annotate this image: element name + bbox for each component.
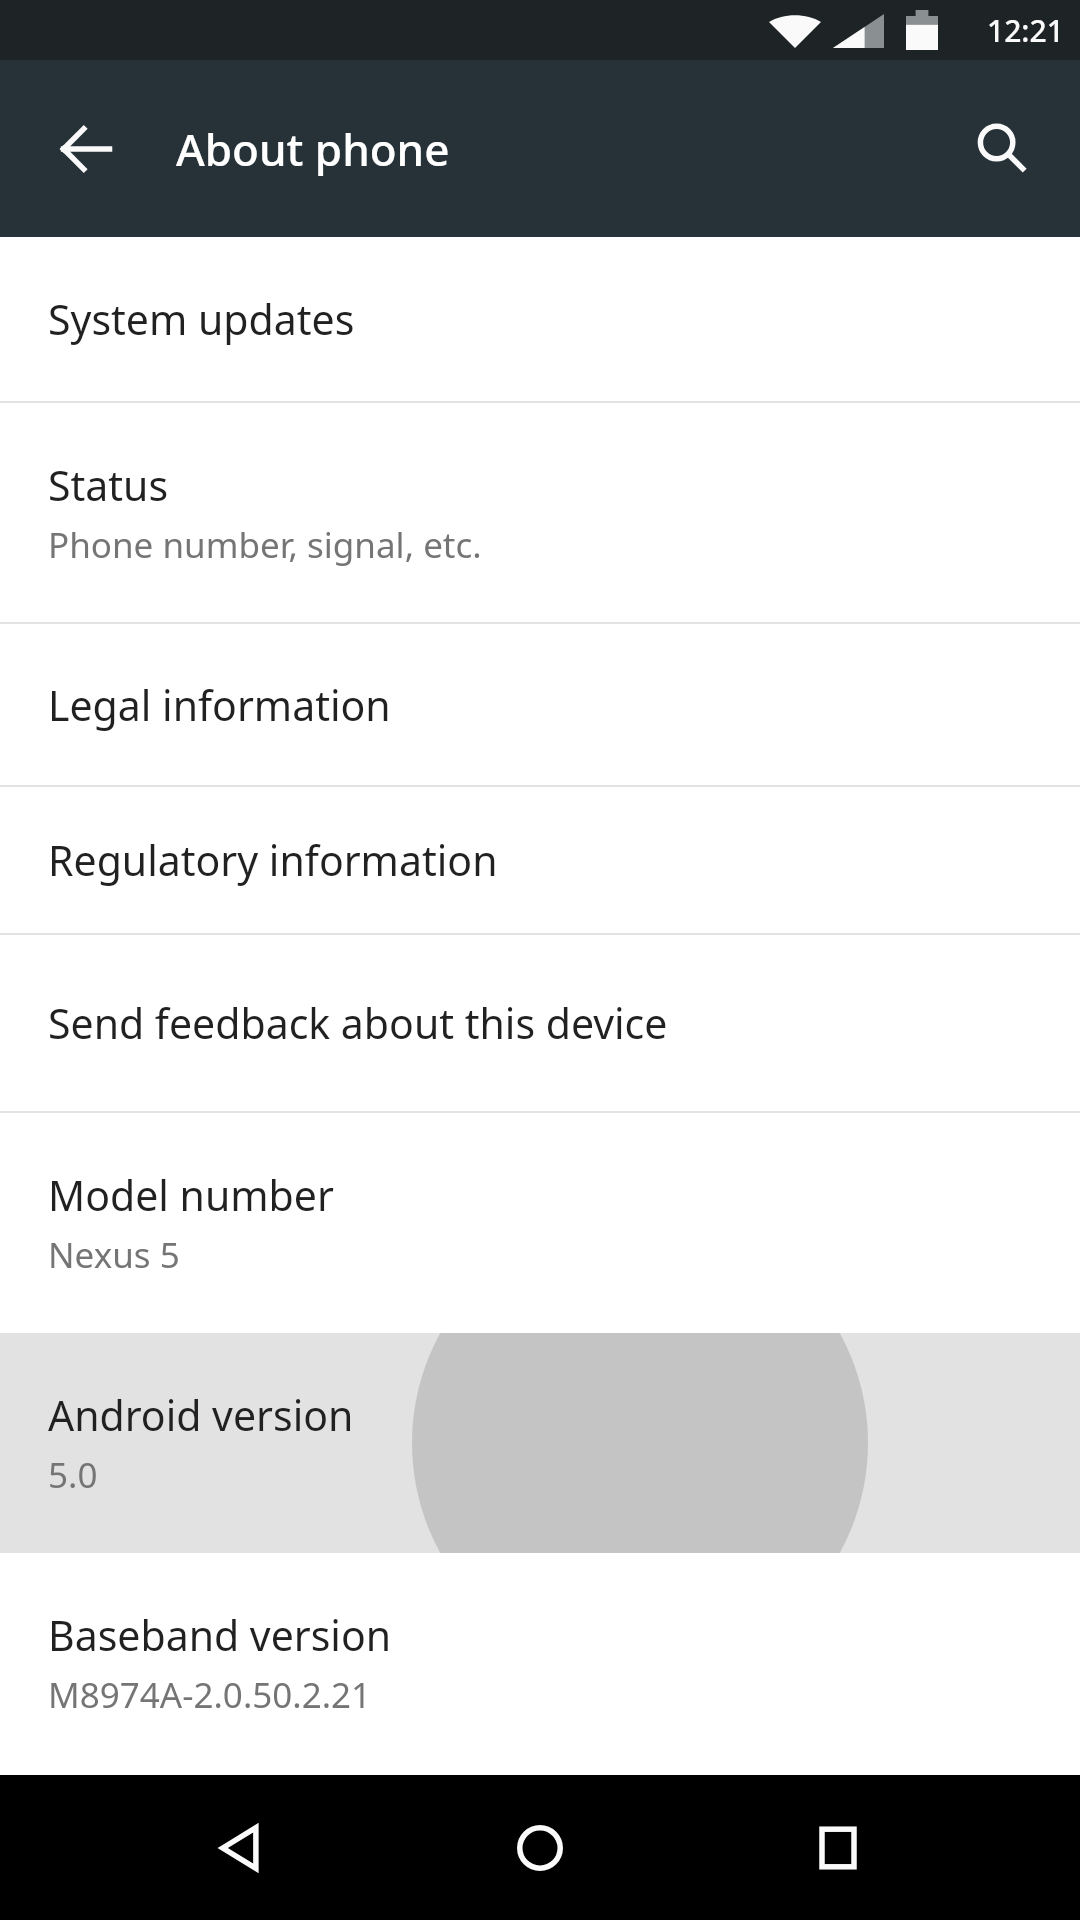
button[interactable]: Back [188,1793,298,1903]
button[interactable]: Status [0,403,1080,622]
staticText: Baseband version [48,1607,392,1663]
staticText: 5.0 [48,1451,98,1499]
staticText: Regulatory information [48,832,498,888]
staticText: 12:21 [987,10,1064,51]
button[interactable]: Search [946,93,1058,205]
staticText: Phone number, signal, etc. [48,521,482,569]
staticText: Model number [48,1167,334,1223]
staticText: Nexus 5 [48,1231,180,1279]
staticText: M8974A-2.0.50.2.21 [48,1671,372,1719]
staticText: About phone [176,119,450,179]
button[interactable]: Back [30,93,142,205]
button[interactable]: Regulatory information [0,787,1080,933]
button[interactable]: System updates [0,237,1080,401]
button[interactable]: Recent apps [783,1793,893,1903]
button[interactable]: Baseband version [0,1553,1080,1773]
button[interactable]: Model number [0,1113,1080,1333]
button[interactable]: Android version [0,1333,1080,1553]
staticText: Legal information [48,677,391,733]
staticText: Status [48,457,169,513]
staticText: System updates [48,291,355,347]
staticText: Send feedback about this device [48,995,668,1051]
staticText: Android version [48,1387,354,1443]
button[interactable]: Legal information [0,624,1080,785]
button[interactable]: Send feedback about this device [0,935,1080,1111]
button[interactable]: Home [485,1793,595,1903]
